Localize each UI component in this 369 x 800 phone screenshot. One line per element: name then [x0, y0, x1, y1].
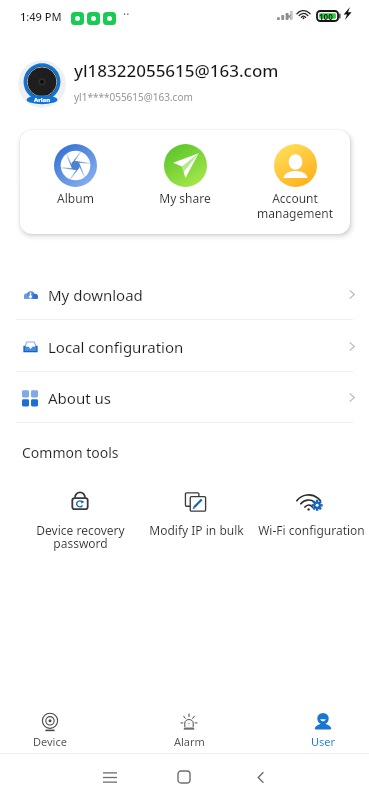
staticText: Device: [33, 734, 67, 749]
staticText: User: [311, 734, 336, 749]
button[interactable]: User: [283, 699, 363, 753]
staticText: Wi-Fi configuration: [258, 522, 365, 538]
staticText: 100: [319, 11, 333, 22]
staticText: My download: [48, 285, 143, 305]
staticText: Alarm: [174, 734, 205, 749]
button[interactable]: Device: [10, 699, 90, 753]
staticText: Modify IP in bulk: [149, 522, 244, 538]
button[interactable]: Wi-Fi configuration: [253, 489, 369, 551]
button[interactable]: Home: [170, 763, 198, 791]
staticText: Account management: [257, 190, 333, 221]
button[interactable]: Local configuration: [0, 321, 369, 372]
button[interactable]: Modify IP in bulk: [138, 489, 254, 551]
button[interactable]: Recent apps: [96, 763, 124, 791]
staticText: yl1****055615@163.com: [74, 90, 193, 104]
staticText: Local configuration: [48, 337, 184, 357]
button[interactable]: Back: [247, 763, 275, 791]
staticText: About us: [48, 388, 111, 408]
staticText: My share: [159, 190, 211, 206]
button[interactable]: Alarm: [149, 699, 229, 753]
staticText: 1:49 PM: [20, 9, 62, 24]
staticText: yl18322055615@163.com: [74, 59, 279, 82]
staticText: ··: [123, 6, 130, 22]
staticText: Album: [57, 190, 94, 206]
button[interactable]: My download: [0, 269, 369, 320]
button[interactable]: About us: [0, 372, 369, 423]
button[interactable]: Album: [20, 130, 130, 234]
button[interactable]: Account management: [240, 130, 350, 234]
button[interactable]: My share: [130, 130, 240, 234]
staticText: Common tools: [22, 443, 119, 462]
staticText: Device recovery password: [36, 522, 125, 552]
staticText: Arlan: [34, 96, 51, 104]
button[interactable]: Device recovery password: [22, 489, 138, 551]
